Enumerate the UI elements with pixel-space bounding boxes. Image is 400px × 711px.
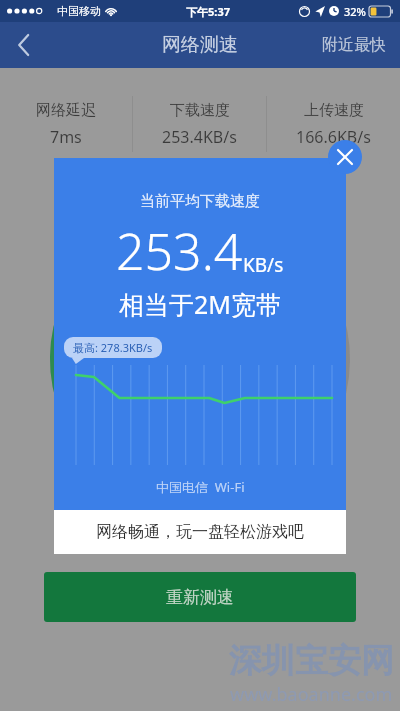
staticText: 7ms <box>50 126 82 148</box>
button[interactable]: 下载速度 <box>133 90 266 158</box>
button[interactable]: 上传速度 <box>267 90 400 158</box>
staticText: 下载速度 <box>170 101 230 120</box>
staticText: 下午5:37 <box>186 4 230 19</box>
staticText: 253.4 <box>116 217 243 285</box>
staticText: 网络测速 <box>162 33 238 57</box>
button[interactable]: 重新测速 <box>44 572 356 622</box>
staticText: 166.6KB/s <box>296 126 371 148</box>
staticText: 32% <box>344 4 366 19</box>
button[interactable]: Close <box>328 140 362 174</box>
staticText: 当前平均下载速度 <box>140 192 260 211</box>
staticText: KB/s <box>243 252 284 278</box>
staticText: 相当于2M宽带 <box>119 287 281 321</box>
staticText: 中国电信 Wi-Fi <box>156 478 245 496</box>
button[interactable]: Back <box>0 22 48 68</box>
staticText: 重新测速 <box>166 587 234 608</box>
staticText: 最高: 278.3KB/s <box>73 340 153 355</box>
staticText: 253.4KB/s <box>162 126 237 148</box>
button[interactable]: 附近最快 <box>318 27 390 63</box>
staticText: 深圳宝安网 <box>229 640 394 682</box>
staticText: 中国移动 <box>57 4 101 18</box>
staticText: 附近最快 <box>322 35 386 55</box>
staticText: 网络畅通，玩一盘轻松游戏吧 <box>96 522 304 542</box>
staticText: www.baoanne.com <box>230 682 393 707</box>
staticText: 网络延迟 <box>36 101 96 120</box>
button[interactable]: 网络延迟 <box>0 90 132 158</box>
staticText: 上传速度 <box>304 101 364 120</box>
button[interactable]: 网络畅通，玩一盘轻松游戏吧 <box>54 510 346 554</box>
